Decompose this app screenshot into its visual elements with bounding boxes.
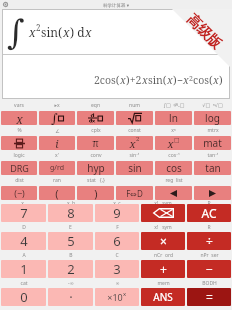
staticText: ∫ [51,111,58,125]
staticText: x [85,24,92,40]
button[interactable]: (−) [1,186,37,200]
button[interactable]: + [141,260,185,278]
button[interactable]: DRG [1,161,37,175]
button[interactable]: i [39,136,75,150]
staticText: ×10 [107,291,123,303]
staticText: ANS [153,290,173,304]
staticText: F⇔D [126,188,143,199]
staticText: − [206,261,213,277]
staticText: ∠ [55,128,60,134]
staticText: sin⁻¹ [129,152,140,159]
button[interactable]: 7 [1,204,46,222]
button[interactable]: x [1,111,37,125]
staticText: x [29,24,36,40]
staticText: □ [174,136,180,143]
staticText: x [167,73,173,87]
staticText: 2cos( [94,73,120,87]
button[interactable]: 5 [48,232,93,250]
staticText: )+2 [126,73,142,87]
staticText: stat {,} [87,177,105,184]
button[interactable]: AC [187,204,231,222]
button[interactable]: 2 [48,260,93,278]
staticText: 2 [136,136,140,143]
staticText: R [207,224,211,231]
button[interactable]: Backspace [141,204,185,222]
button[interactable]: · [48,288,93,306]
button[interactable]: g/rd [39,161,75,175]
staticText: 6 [113,232,121,250]
button[interactable]: log [194,111,231,125]
staticText: nCr ord [154,252,173,259]
staticText: i [55,136,59,150]
button[interactable]: 6 [95,232,139,250]
button[interactable]: Move cursor left [155,186,192,200]
staticText: 2 [36,22,41,33]
button[interactable]: Square root [116,111,153,125]
button[interactable]: x [116,136,153,150]
staticText: sin( [148,73,167,87]
staticText: E [69,224,72,231]
button[interactable]: Derivative [77,111,114,125]
staticText: cos( [193,73,213,87]
staticText: mtrx [207,127,219,134]
staticText: log [205,111,220,125]
staticText: 1 [20,260,28,278]
staticText: hyp [87,161,105,175]
staticText: D [22,224,26,231]
staticText: g/rd [50,163,64,173]
staticText: 高级版 [183,11,225,53]
staticText: F [116,224,119,231]
staticText: x [142,73,148,87]
button[interactable]: 8 [48,204,93,222]
staticText: logic [13,152,25,159]
button[interactable]: x [155,136,192,150]
staticText: 5 [67,232,75,250]
staticText: BODH [202,280,217,287]
staticText: 4 [20,232,28,250]
button[interactable]: sin [116,161,153,175]
button[interactable]: 3 [95,260,139,278]
button[interactable]: = [187,288,231,306]
staticText: ∞ [115,280,120,286]
staticText: ∫ [7,12,25,52]
button[interactable]: ×10 [95,288,139,306]
staticText: )− [173,73,183,87]
staticText: ln [169,111,178,125]
button[interactable]: hyp [77,161,114,175]
button[interactable]: mat [194,136,231,150]
staticText: AC [201,205,217,221]
staticText: const [128,127,141,134]
button[interactable]: Fraction template [1,136,37,150]
button[interactable]: ANS [141,288,185,306]
staticText: ∫□ ᵈ⁄ᵈₓ□ [163,102,185,109]
button[interactable]: × [141,232,185,250]
button[interactable]: cos [155,161,192,175]
button[interactable]: 4 [1,232,46,250]
staticText: x [167,136,174,150]
staticText: ran [53,177,61,184]
staticText: -∞ [68,280,74,287]
button[interactable]: 0 [1,288,46,306]
staticText: 科学计算器 ▾ [103,2,129,8]
staticText: (−) [14,187,25,199]
button[interactable]: tan [194,161,231,175]
button[interactable]: ) [77,186,114,200]
staticText: + [160,261,167,277]
button[interactable]: 9 [95,204,139,222]
button[interactable]: π [77,136,114,150]
button[interactable]: 1 [1,260,46,278]
staticText: x! sym [154,224,172,231]
button[interactable]: − [187,260,231,278]
staticText: √□ ⁿ√□ [202,102,223,109]
staticText: sin( [41,24,63,40]
staticText: · [69,288,73,306]
staticText: ÷ [206,233,213,249]
staticText: eqn [91,102,100,109]
button[interactable]: Integral [39,111,75,125]
staticText: x_c [113,200,121,204]
button[interactable]: F⇔D [116,186,153,200]
button[interactable]: ln [155,111,192,125]
button[interactable]: ÷ [187,232,231,250]
button[interactable]: ( [39,186,75,200]
button[interactable]: Move cursor right [194,186,231,200]
